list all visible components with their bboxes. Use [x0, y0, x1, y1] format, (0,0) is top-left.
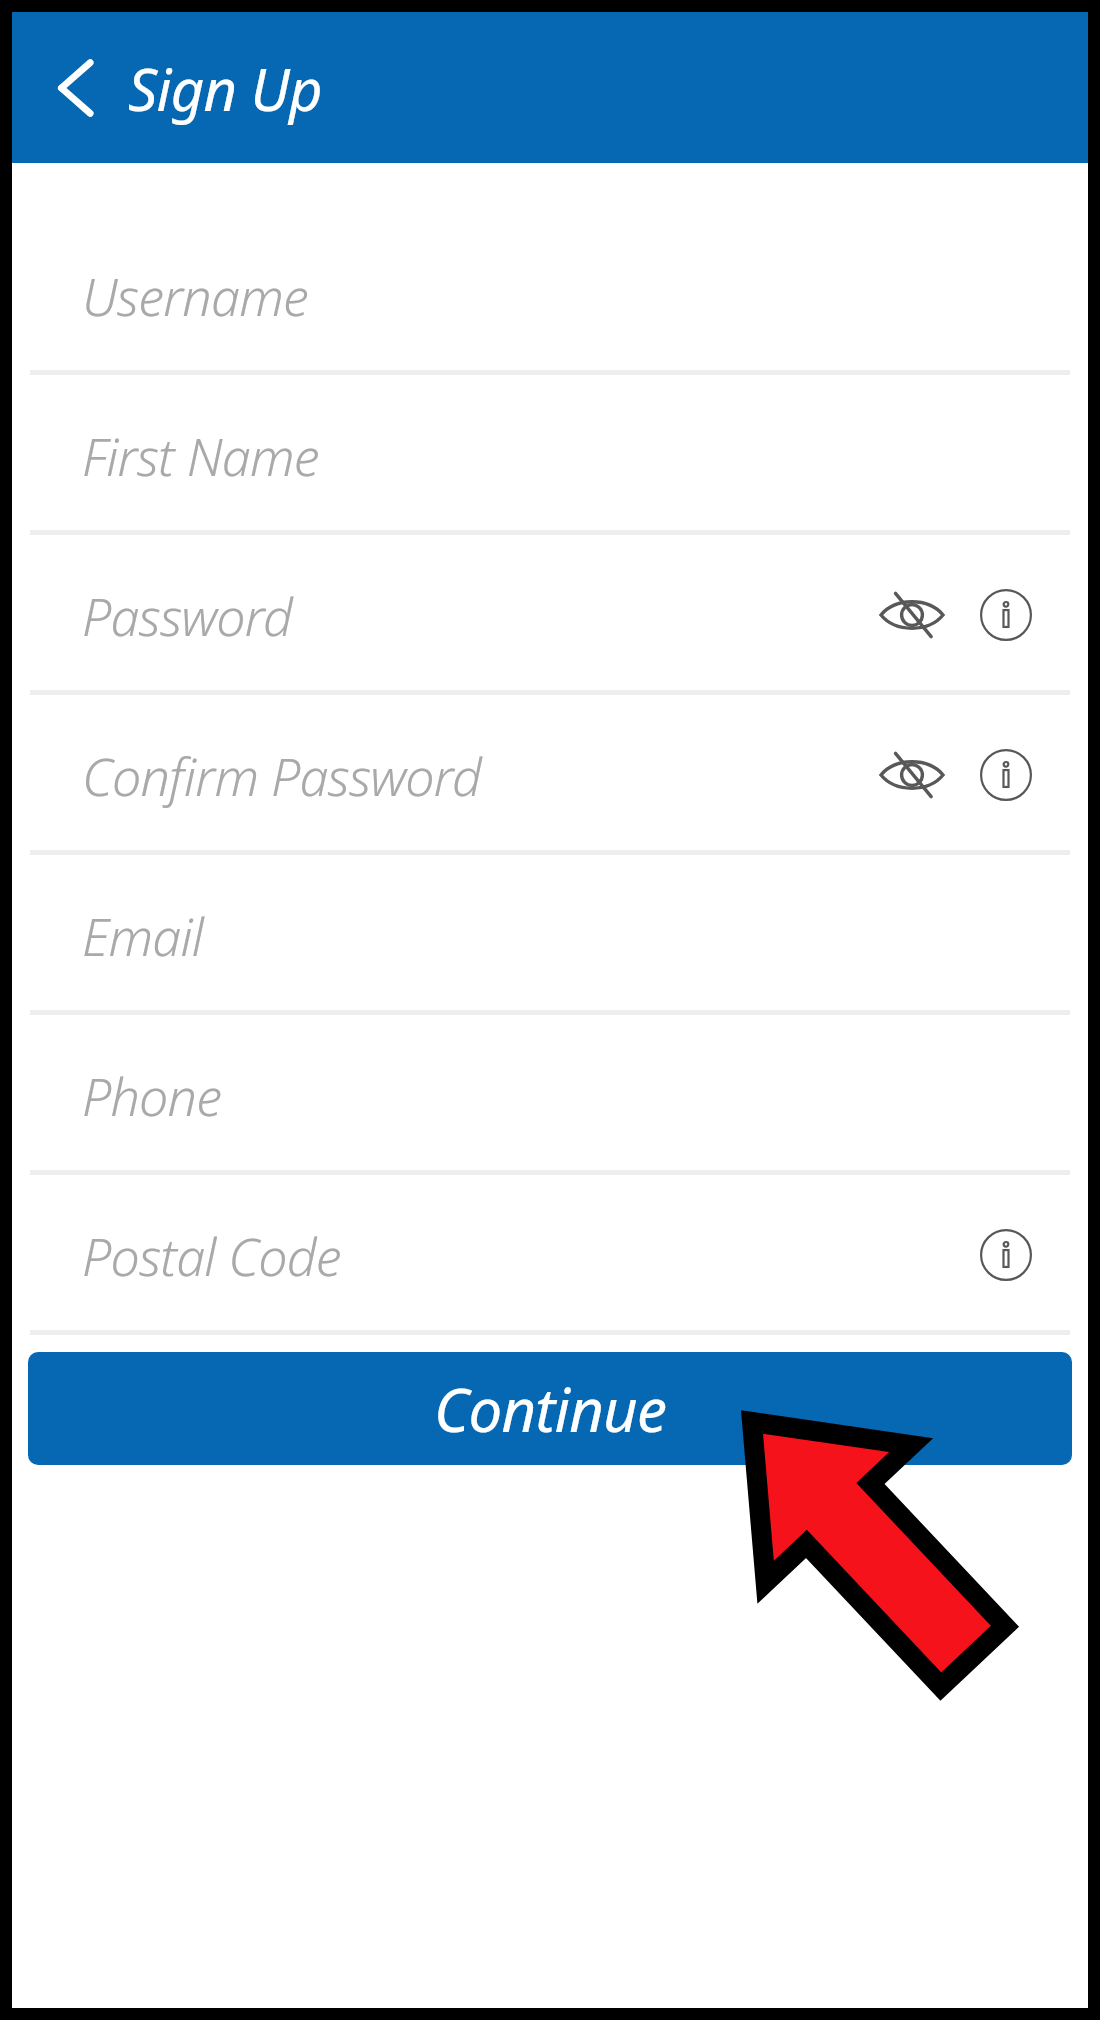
button[interactable]: Postal Code — [12, 1175, 1088, 1335]
staticText: Postal Code — [82, 1220, 341, 1291]
staticText: First Name — [82, 420, 319, 491]
staticText: Sign Up — [128, 49, 322, 128]
staticText: Confirm Password — [82, 740, 481, 811]
button[interactable]: Information — [964, 573, 1048, 657]
button[interactable]: Email — [12, 855, 1088, 1015]
button[interactable]: Information — [964, 1213, 1048, 1297]
staticText: Password — [82, 580, 292, 651]
button[interactable]: Continue — [28, 1352, 1072, 1465]
button[interactable]: Phone — [12, 1015, 1088, 1175]
button[interactable]: Show password — [870, 733, 954, 817]
button[interactable]: Username — [12, 215, 1088, 375]
button[interactable]: Password — [12, 535, 1088, 695]
button[interactable]: Back — [32, 45, 118, 131]
staticText: Email — [82, 900, 204, 971]
button[interactable]: Information — [964, 733, 1048, 817]
staticText: Username — [82, 260, 308, 331]
button[interactable]: Confirm Password — [12, 695, 1088, 855]
staticText: Phone — [82, 1060, 222, 1131]
staticText: Continue — [434, 1368, 667, 1450]
button[interactable]: Show password — [870, 573, 954, 657]
button[interactable]: First Name — [12, 375, 1088, 535]
